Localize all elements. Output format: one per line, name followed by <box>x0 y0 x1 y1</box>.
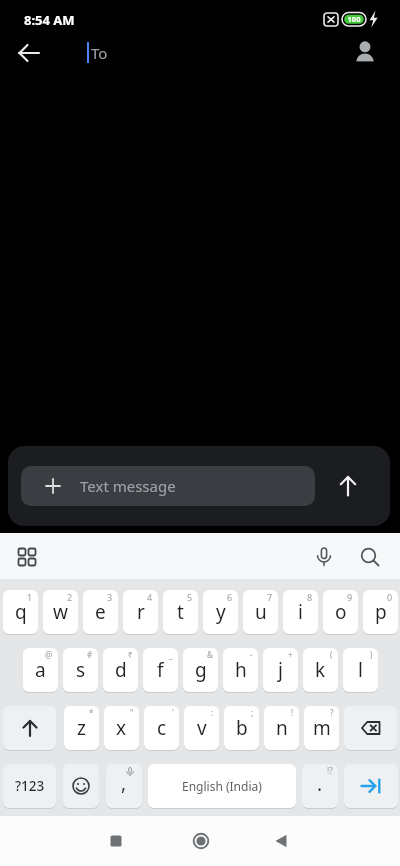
staticText: " <box>130 707 134 718</box>
button[interactable] <box>344 706 397 750</box>
button[interactable] <box>341 28 389 76</box>
staticText: 6 <box>227 591 233 603</box>
staticText: . <box>317 771 323 797</box>
button[interactable]: o <box>323 590 358 634</box>
staticText: h <box>235 657 247 683</box>
staticText: i <box>298 599 303 625</box>
staticText: & <box>207 649 213 660</box>
staticText: ?123 <box>15 777 45 795</box>
button[interactable]: j <box>263 648 298 692</box>
staticText: 4 <box>147 591 153 603</box>
staticText: ₹ <box>128 649 133 660</box>
staticText: Text message <box>80 476 176 496</box>
button[interactable]: Text message <box>21 466 315 506</box>
staticText: v <box>197 715 207 741</box>
staticText: q <box>15 599 27 625</box>
staticText: 5 <box>187 591 193 603</box>
staticText: ; <box>251 707 254 718</box>
button[interactable]: x <box>104 706 139 750</box>
button[interactable]: . <box>302 764 338 808</box>
staticText: p <box>375 599 387 625</box>
staticText: w <box>53 599 68 625</box>
button[interactable] <box>179 819 223 863</box>
staticText: t <box>177 599 184 625</box>
staticText: ( <box>330 649 333 660</box>
staticText: u <box>255 599 267 625</box>
staticText: To <box>91 43 108 63</box>
button[interactable]: English (India) <box>148 764 296 808</box>
button[interactable] <box>344 764 398 808</box>
button[interactable] <box>94 819 138 863</box>
button[interactable]: r <box>123 590 158 634</box>
button[interactable]: y <box>203 590 238 634</box>
button[interactable]: p <box>363 590 398 634</box>
button[interactable]: q <box>3 590 38 634</box>
staticText: o <box>335 599 347 625</box>
staticText: 8 <box>307 591 313 603</box>
button[interactable]: i <box>283 590 318 634</box>
staticText: : <box>211 707 214 718</box>
staticText: 8:54 AM <box>24 11 75 29</box>
button[interactable]: f <box>143 648 178 692</box>
staticText: c <box>157 715 167 741</box>
staticText: !? <box>327 765 333 776</box>
button[interactable]: v <box>184 706 219 750</box>
button[interactable]: b <box>224 706 259 750</box>
button[interactable] <box>5 535 49 579</box>
staticText: - <box>250 649 253 660</box>
button[interactable]: ?123 <box>3 764 56 808</box>
staticText: 3 <box>107 591 113 603</box>
staticText: y <box>216 599 226 625</box>
staticText: l <box>358 657 363 683</box>
staticText: + <box>288 649 293 660</box>
button[interactable] <box>348 535 392 579</box>
staticText: z <box>77 715 86 741</box>
button[interactable] <box>324 462 372 510</box>
staticText: 7 <box>267 591 273 603</box>
staticText: r <box>137 599 145 625</box>
button[interactable] <box>5 29 53 77</box>
staticText: @ <box>45 649 53 660</box>
button[interactable]: n <box>264 706 299 750</box>
staticText: # <box>87 649 93 660</box>
button[interactable]: , <box>106 764 142 808</box>
staticText: k <box>315 657 326 683</box>
button[interactable]: k <box>303 648 338 692</box>
staticText: g <box>195 657 207 683</box>
button[interactable]: d <box>103 648 138 692</box>
staticText: * <box>89 707 94 718</box>
button[interactable]: t <box>163 590 198 634</box>
staticText: m <box>313 715 331 741</box>
button[interactable]: u <box>243 590 278 634</box>
staticText: ! <box>291 707 294 718</box>
button[interactable]: m <box>304 706 339 750</box>
staticText: _ <box>169 649 173 660</box>
button[interactable]: g <box>183 648 218 692</box>
staticText: ? <box>330 707 334 718</box>
staticText: d <box>115 657 127 683</box>
staticText: ' <box>172 707 174 718</box>
staticText: , <box>121 770 127 796</box>
button[interactable] <box>302 535 346 579</box>
staticText: e <box>95 599 106 625</box>
staticText: 100 <box>344 14 364 24</box>
button[interactable]: z <box>64 706 99 750</box>
button[interactable] <box>259 819 303 863</box>
staticText: English (India) <box>182 778 262 794</box>
staticText: a <box>35 657 46 683</box>
button[interactable] <box>3 706 56 750</box>
button[interactable]: w <box>43 590 78 634</box>
button[interactable] <box>63 764 99 808</box>
button[interactable]: c <box>144 706 179 750</box>
button[interactable]: a <box>23 648 58 692</box>
staticText: 0 <box>387 591 393 603</box>
staticText: 1 <box>27 591 33 603</box>
button[interactable]: l <box>343 648 378 692</box>
staticText: n <box>276 715 288 741</box>
button[interactable]: e <box>83 590 118 634</box>
staticText: x <box>116 715 127 741</box>
staticText: 9 <box>347 591 353 603</box>
button[interactable]: s <box>63 648 98 692</box>
button[interactable]: h <box>223 648 258 692</box>
staticText: ) <box>370 649 373 660</box>
